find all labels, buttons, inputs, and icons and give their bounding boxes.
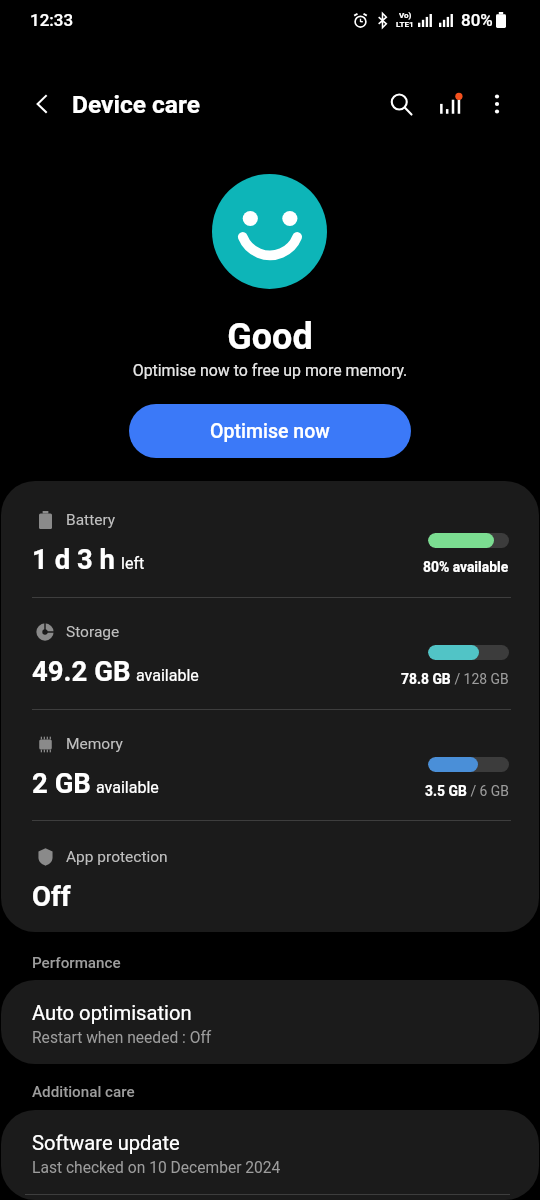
button[interactable]: Search — [377, 80, 425, 128]
staticText: Memory — [66, 735, 123, 753]
button[interactable]: Storage — [1, 599, 539, 711]
button[interactable]: Auto optimisation — [1, 980, 539, 1064]
staticText: Storage — [66, 623, 120, 641]
staticText: Battery — [66, 511, 116, 529]
staticText: available — [96, 778, 159, 797]
staticText: 78.8 GB — [401, 671, 451, 687]
staticText: 3.5 GB — [425, 783, 467, 799]
button[interactable]: Navigate up — [16, 78, 68, 130]
staticText: LTE1 — [396, 20, 414, 29]
staticText: Device care — [72, 90, 200, 119]
staticText: 12:33 — [30, 10, 74, 30]
staticText: Off — [32, 880, 71, 912]
staticText: Software update — [32, 1131, 180, 1155]
button[interactable]: Software update — [1, 1110, 539, 1200]
button[interactable]: Memory — [1, 711, 539, 823]
staticText: Optimise now — [210, 420, 330, 443]
button[interactable]: App protection — [1, 822, 539, 932]
staticText: Last checked on 10 December 2024 — [32, 1159, 281, 1177]
staticText: 2 GB — [32, 767, 91, 799]
button[interactable]: More options — [473, 80, 521, 128]
staticText: Additional care — [32, 1083, 135, 1101]
staticText: Vo) — [399, 11, 412, 20]
staticText: available — [136, 666, 199, 685]
staticText: Good — [0, 316, 540, 358]
staticText: App protection — [66, 848, 168, 866]
staticText: Performance — [32, 954, 121, 972]
staticText: 80% available — [423, 559, 509, 575]
staticText: / 6 GB — [467, 783, 509, 799]
button[interactable]: Battery — [1, 487, 539, 599]
staticText: / 128 GB — [451, 671, 509, 687]
button[interactable]: Optimise now — [129, 404, 411, 458]
staticText: left — [121, 554, 145, 573]
staticText: 80% — [461, 10, 493, 30]
staticText: Restart when needed : Off — [32, 1029, 212, 1047]
staticText: Optimise now to free up more memory. — [0, 361, 540, 380]
button[interactable]: Usage statistics — [425, 80, 473, 128]
staticText: 49.2 GB — [32, 655, 131, 687]
staticText: Auto optimisation — [32, 1001, 192, 1025]
staticText: 1 d 3 h — [32, 543, 116, 575]
